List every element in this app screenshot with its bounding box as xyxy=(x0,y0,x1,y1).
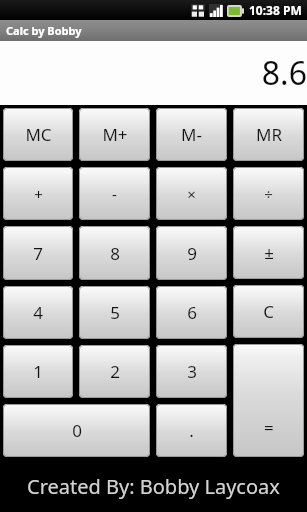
staticText: 8.6 xyxy=(261,51,307,95)
staticText: 4 xyxy=(33,301,43,324)
button[interactable]: . xyxy=(156,404,227,457)
button[interactable]: × xyxy=(156,167,227,220)
staticText: ± xyxy=(264,241,274,264)
staticText: 1 xyxy=(33,360,43,383)
button[interactable]: 7 xyxy=(3,226,73,280)
staticText: ÷ xyxy=(264,184,273,204)
button[interactable]: ± xyxy=(233,226,304,279)
staticText: Created By: Bobby Laycoax xyxy=(27,473,280,500)
staticText: MC xyxy=(25,123,52,146)
staticText: = xyxy=(264,416,274,439)
button[interactable]: + xyxy=(3,167,73,220)
staticText: 7 xyxy=(33,242,43,265)
staticText: 5 xyxy=(110,301,120,324)
button[interactable]: MR xyxy=(233,108,304,161)
staticText: Calc by Bobby xyxy=(6,23,82,38)
button[interactable]: - xyxy=(79,167,150,220)
staticText: 9 xyxy=(187,242,197,265)
staticText: C xyxy=(263,300,274,323)
staticText: 0 xyxy=(72,419,82,442)
button[interactable]: MC xyxy=(3,108,73,161)
button[interactable]: C xyxy=(233,285,304,338)
button[interactable]: ÷ xyxy=(233,167,304,220)
button[interactable]: 2 xyxy=(79,345,150,398)
staticText: - xyxy=(112,184,117,204)
staticText: 3 xyxy=(187,360,197,383)
staticText: . xyxy=(189,419,194,442)
button[interactable]: 1 xyxy=(3,345,73,398)
button[interactable]: M- xyxy=(156,108,227,161)
button[interactable]: 6 xyxy=(156,286,227,339)
staticText: 8 xyxy=(110,242,120,265)
button[interactable]: 8 xyxy=(79,226,150,280)
staticText: + xyxy=(34,184,43,204)
staticText: 6 xyxy=(187,301,197,324)
staticText: M+ xyxy=(102,123,128,146)
button[interactable]: 4 xyxy=(3,286,73,339)
staticText: MR xyxy=(256,123,282,146)
button[interactable]: = xyxy=(233,344,304,457)
button[interactable]: 9 xyxy=(156,226,227,280)
staticText: M- xyxy=(181,123,202,146)
button[interactable]: 0 xyxy=(3,404,150,457)
staticText: 10:38 PM xyxy=(249,2,302,18)
button[interactable]: M+ xyxy=(79,108,150,161)
staticText: 2 xyxy=(110,360,120,383)
button[interactable]: 3 xyxy=(156,345,227,398)
button[interactable]: 5 xyxy=(79,286,150,339)
staticText: × xyxy=(187,184,196,204)
